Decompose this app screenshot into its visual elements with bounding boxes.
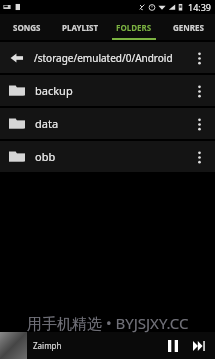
- staticText: GENRES: [173, 22, 204, 33]
- staticText: PLAYLIST: [62, 22, 99, 33]
- staticText: obb: [35, 149, 56, 164]
- button[interactable]: More options: [190, 77, 208, 105]
- button[interactable]: FOLDERS: [107, 14, 161, 40]
- other: Up one folder: [10, 51, 24, 65]
- button[interactable]: More options: [190, 44, 208, 72]
- staticText: data: [35, 116, 59, 131]
- button[interactable]: More options: [190, 143, 208, 171]
- button[interactable]: GENRES: [161, 14, 215, 40]
- button[interactable]: PLAYLIST: [53, 14, 107, 40]
- staticText: /storage/emulated/0/Android: [34, 51, 173, 65]
- staticText: Zaimph: [33, 340, 62, 351]
- staticText: 用手机精选 • BYJSJXY.CC: [27, 313, 189, 333]
- button[interactable]: Up one folder: [0, 42, 215, 73]
- button[interactable]: More options: [190, 110, 208, 138]
- staticText: SONGS: [13, 22, 41, 33]
- staticText: FOLDERS: [116, 22, 152, 33]
- button[interactable]: obb: [0, 141, 215, 172]
- button[interactable]: data: [0, 108, 215, 139]
- staticText: backup: [35, 83, 73, 98]
- button[interactable]: Zaimph: [0, 332, 215, 359]
- button[interactable]: Next track: [186, 332, 212, 359]
- button[interactable]: SONGS: [0, 14, 53, 40]
- staticText: 14:39: [188, 1, 212, 13]
- button[interactable]: Pause: [160, 332, 186, 359]
- button[interactable]: backup: [0, 75, 215, 106]
